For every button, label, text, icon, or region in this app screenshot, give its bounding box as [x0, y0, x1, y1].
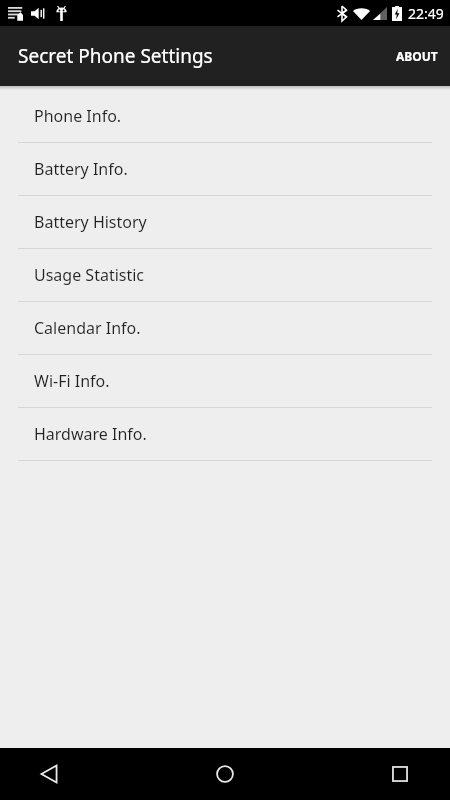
button[interactable]: Battery History: [0, 196, 450, 249]
staticText: Usage Statistic: [34, 264, 145, 286]
button[interactable]: Home: [150, 748, 300, 800]
staticText: 22:49: [408, 4, 444, 23]
button[interactable]: ABOUT: [384, 34, 450, 78]
button[interactable]: Hardware Info.: [0, 408, 450, 461]
staticText: Wi-Fi Info.: [34, 370, 110, 392]
staticText: Secret Phone Settings: [18, 43, 213, 69]
button[interactable]: Phone Info.: [0, 90, 450, 143]
staticText: ABOUT: [396, 48, 438, 64]
button[interactable]: Wi-Fi Info.: [0, 355, 450, 408]
staticText: Calendar Info.: [34, 317, 141, 339]
button[interactable]: Recent apps: [300, 748, 450, 800]
button[interactable]: Usage Statistic: [0, 249, 450, 302]
staticText: Hardware Info.: [34, 423, 147, 445]
button[interactable]: Calendar Info.: [0, 302, 450, 355]
staticText: Battery History: [34, 211, 147, 233]
staticText: Battery Info.: [34, 158, 128, 180]
staticText: Phone Info.: [34, 105, 122, 127]
button[interactable]: Back: [0, 748, 150, 800]
button[interactable]: Battery Info.: [0, 143, 450, 196]
